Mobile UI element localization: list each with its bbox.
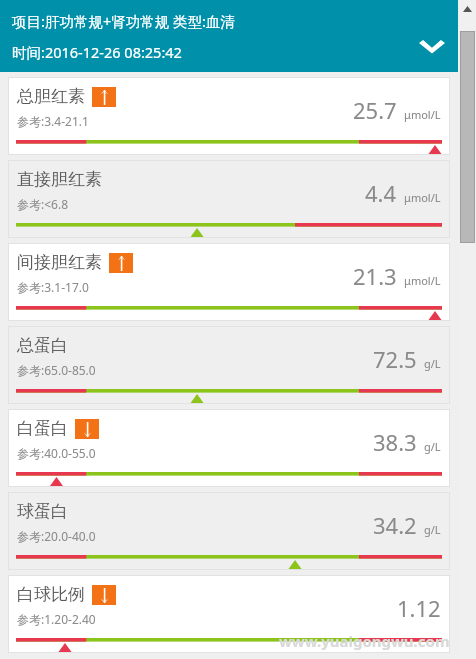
staticText: 参考:3.4-21.1: [17, 113, 89, 129]
staticText: 球蛋白: [17, 501, 68, 522]
staticText: 时间:2016-12-26 08:25:42: [12, 42, 182, 62]
staticText: 参考:1.20-2.40: [17, 611, 96, 627]
staticText: www.yuaigongwu.com: [279, 631, 450, 651]
button[interactable]: 直接胆红素: [9, 161, 449, 237]
staticText: 白蛋白: [17, 418, 68, 439]
staticText: 参考:65.0-85.0: [17, 362, 96, 378]
staticText: μmol/L: [404, 107, 441, 122]
staticText: 4.4: [365, 178, 397, 208]
staticText: g/L: [424, 439, 441, 454]
button[interactable]: 间接胆红素: [9, 244, 449, 320]
staticText: 21.3: [353, 261, 397, 291]
staticText: 总胆红素: [17, 86, 85, 107]
staticText: 参考:20.0-40.0: [17, 528, 96, 544]
staticText: 72.5: [373, 344, 417, 374]
staticText: 参考:3.1-17.0: [17, 279, 89, 295]
staticText: μmol/L: [404, 190, 441, 205]
staticText: 参考:40.0-55.0: [17, 445, 96, 461]
staticText: 参考:<6.8: [17, 196, 69, 212]
staticText: g/L: [424, 522, 441, 537]
button[interactable]: 总蛋白: [9, 327, 449, 403]
staticText: 间接胆红素: [17, 252, 102, 273]
button[interactable]: 总胆红素: [9, 78, 449, 154]
staticText: μmol/L: [404, 273, 441, 288]
staticText: 38.3: [373, 427, 417, 457]
button[interactable]: 球蛋白: [9, 493, 449, 569]
staticText: 34.2: [373, 510, 417, 540]
staticText: g/L: [424, 356, 441, 371]
button[interactable]: Collapse: [412, 28, 452, 68]
staticText: 1.12: [397, 593, 441, 623]
button[interactable]: 白球比例: [9, 576, 449, 652]
button[interactable]: 项目:肝功常规+肾功常规 类型:血清: [0, 0, 458, 72]
button[interactable]: 白蛋白: [9, 410, 449, 486]
staticText: 项目:肝功常规+肾功常规 类型:血清: [12, 11, 235, 31]
staticText: 白球比例: [17, 584, 85, 605]
staticText: 直接胆红素: [17, 169, 102, 190]
staticText: 总蛋白: [17, 335, 68, 356]
staticText: 25.7: [353, 95, 397, 125]
